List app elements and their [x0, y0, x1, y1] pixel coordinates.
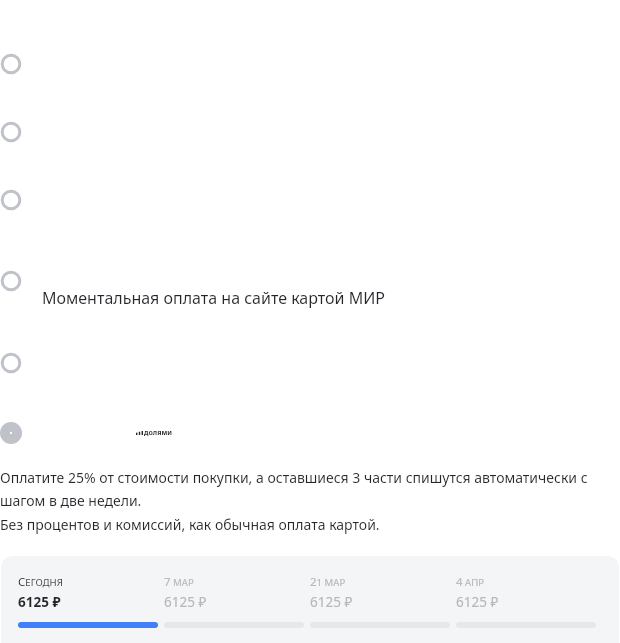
- staticText: Моментальная оплата на сайте картой МИР: [42, 287, 385, 309]
- staticText: СЕГОДНЯ: [18, 574, 63, 590]
- staticText: 6125 ₽: [456, 593, 499, 611]
- button[interactable]: Current payment step: [0, 422, 22, 444]
- staticText: 6125 ₽: [18, 593, 61, 611]
- button[interactable]: Payment step: [0, 352, 22, 374]
- button[interactable]: Payment step: [0, 270, 22, 292]
- staticText: 7 МАР: [164, 574, 194, 590]
- staticText: долями: [144, 428, 172, 438]
- button[interactable]: Payment step: [0, 121, 22, 143]
- button[interactable]: Payment step: [0, 53, 22, 75]
- staticText: 21 МАР: [310, 574, 346, 590]
- staticText: Оплатите 25% от стоимости покупки, а ост…: [0, 468, 588, 535]
- staticText: 6125 ₽: [310, 593, 353, 611]
- staticText: 4 АПР: [456, 574, 485, 590]
- button[interactable]: Payment step: [0, 189, 22, 211]
- button[interactable]: СЕГОДНЯ: [1, 556, 619, 643]
- button[interactable]: Долями: [136, 425, 172, 437]
- staticText: 6125 ₽: [164, 593, 207, 611]
